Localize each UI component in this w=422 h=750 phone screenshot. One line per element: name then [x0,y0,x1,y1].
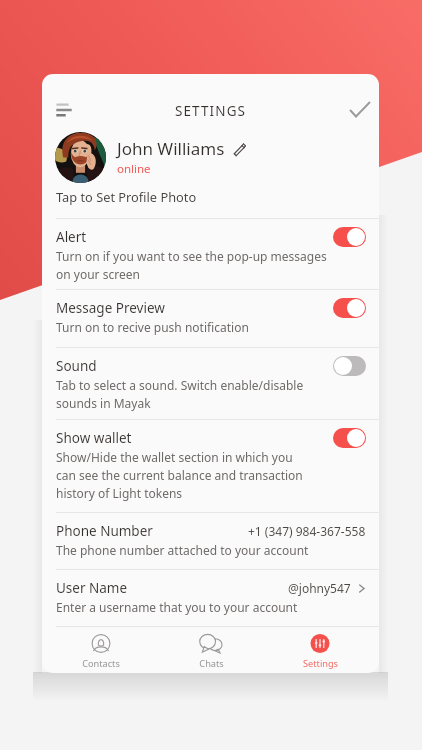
staticText: Alert [56,228,87,246]
staticText: online [117,161,151,177]
staticText: Settings [303,657,338,670]
staticText: Show wallet [56,429,132,447]
staticText: Sound [56,357,97,375]
staticText: Turn on to recive push notification [56,319,249,335]
button[interactable]: Show wallet [42,420,379,513]
button[interactable]: Edit name [232,142,246,156]
button[interactable]: Message Preview [42,290,379,348]
staticText: Contacts [82,657,120,670]
staticText: Enter a username that you to your accoun… [56,599,298,615]
staticText: Tab to select a sound. Switch enable/dis… [56,377,304,412]
staticText: Show/Hide the wallet section in which yo… [56,449,303,502]
button[interactable]: Tap to Set Profile Photo [42,188,379,219]
button[interactable]: Profile photo [55,132,106,183]
button[interactable]: Settings [270,627,370,673]
button[interactable]: Menu [48,94,80,126]
button[interactable]: Switch on [333,298,366,318]
button[interactable]: Switch on [333,227,366,247]
button[interactable]: Contacts [51,627,151,673]
staticText: John Williams [117,137,225,160]
button[interactable]: Switch off [333,356,366,376]
staticText: Tap to Set Profile Photo [56,188,197,205]
button[interactable]: User Name [42,570,379,627]
button[interactable]: Phone Number [42,513,379,570]
button[interactable]: Sound [42,348,379,420]
button[interactable]: Chats [161,627,261,673]
button[interactable]: Alert [42,219,379,290]
staticText: +1 (347) 984-367-558 [248,523,366,539]
staticText: Turn on if you want to see the pop-up me… [56,248,327,283]
staticText: @johny547 [288,580,351,596]
staticText: SETTINGS [175,102,247,120]
staticText: Chats [199,657,224,670]
button[interactable]: Done [344,94,376,126]
staticText: Phone Number [56,522,153,540]
staticText: Message Preview [56,299,165,317]
button[interactable]: Switch on [333,428,366,448]
staticText: User Name [56,579,128,597]
staticText: The phone number attached to your accoun… [56,542,309,558]
